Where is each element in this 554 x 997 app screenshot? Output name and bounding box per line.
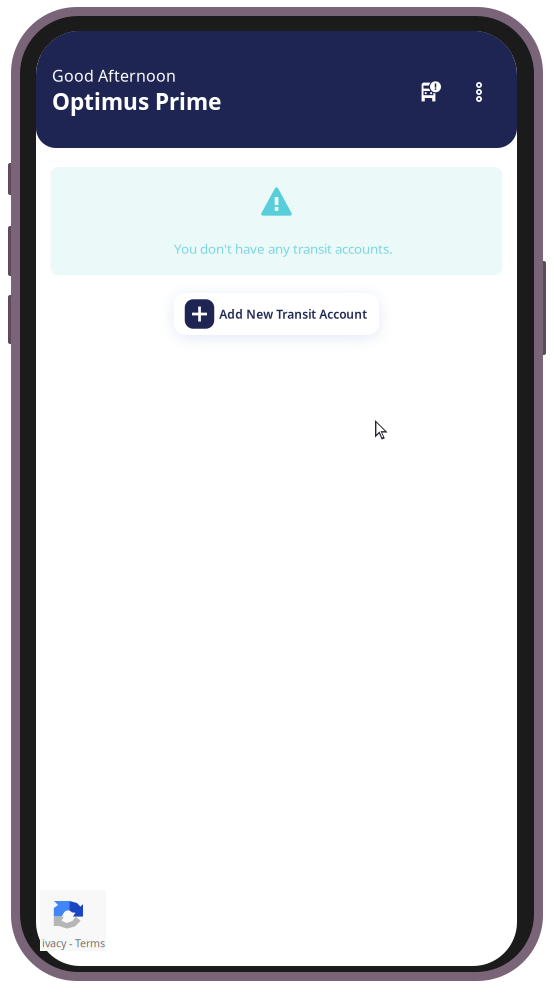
staticText: Optimus Prime xyxy=(52,86,222,116)
button[interactable]: More options xyxy=(466,72,492,112)
staticText: ivacy - Terms xyxy=(42,936,105,950)
button[interactable]: Service alerts xyxy=(413,73,450,111)
staticText: You don't have any transit accounts. xyxy=(174,240,393,257)
staticText: Good Afternoon xyxy=(52,65,176,86)
staticText: Add New Transit Account xyxy=(219,306,367,322)
button[interactable]: Add New Transit Account xyxy=(174,293,379,335)
